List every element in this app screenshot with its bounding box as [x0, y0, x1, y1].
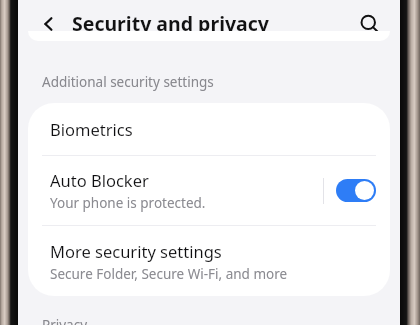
button[interactable]: Search: [351, 6, 387, 42]
staticText: Additional security settings: [42, 73, 214, 91]
staticText: Auto Blocker: [50, 169, 149, 191]
staticText: More security settings: [50, 240, 222, 262]
staticText: Biometrics: [50, 118, 133, 140]
button[interactable]: Auto Blocker: [28, 156, 390, 225]
button[interactable]: Auto Blocker toggle, on: [336, 179, 376, 202]
staticText: Your phone is protected.: [50, 194, 206, 212]
staticText: Security and privacy: [72, 10, 269, 37]
staticText: Secure Folder, Secure Wi-Fi, and more: [50, 265, 288, 283]
button[interactable]: Back: [31, 6, 67, 42]
staticText: Privacy: [42, 316, 88, 325]
button[interactable]: More security settings: [28, 226, 390, 296]
button[interactable]: Biometrics: [28, 103, 390, 155]
